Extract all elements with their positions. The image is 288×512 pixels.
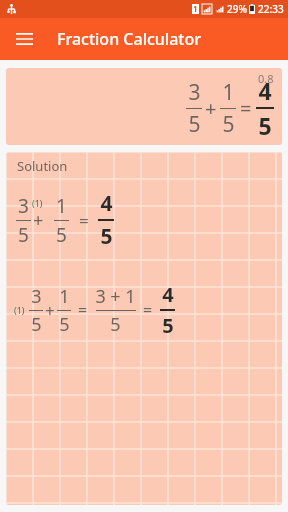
- staticText: 1: [222, 78, 235, 107]
- staticText: 5: [59, 312, 70, 337]
- staticText: 1: [56, 193, 67, 219]
- staticText: +: [45, 299, 55, 322]
- staticText: 5: [31, 312, 42, 337]
- staticText: 3: [18, 193, 29, 219]
- staticText: =: [78, 299, 88, 321]
- staticText: 0.8: [258, 71, 274, 86]
- staticText: Fraction Calculator: [57, 28, 201, 50]
- staticText: 22:33: [258, 2, 284, 16]
- staticText: 5: [18, 222, 29, 248]
- staticText: 5: [188, 110, 201, 139]
- staticText: +: [205, 95, 217, 122]
- staticText: 5: [110, 312, 121, 337]
- staticText: 4: [162, 281, 174, 308]
- staticText: 5: [56, 222, 67, 248]
- staticText: 3: [188, 78, 201, 107]
- button[interactable]: Open navigation menu: [6, 21, 42, 57]
- staticText: 4: [100, 189, 113, 218]
- staticText: 5: [100, 222, 113, 251]
- staticText: 5: [258, 110, 272, 141]
- staticText: =: [240, 95, 252, 122]
- button[interactable]: 0.8: [6, 68, 282, 145]
- staticText: =: [143, 299, 153, 321]
- button[interactable]: Solution: [6, 152, 282, 505]
- staticText: 5: [222, 110, 235, 139]
- staticText: 5: [162, 312, 174, 339]
- staticText: 3: [31, 284, 42, 309]
- staticText: 29%: [227, 2, 247, 16]
- staticText: 3 + 1: [95, 284, 136, 309]
- staticText: =: [79, 209, 89, 232]
- staticText: 4: [258, 75, 272, 106]
- staticText: (1): [14, 304, 25, 316]
- staticText: (1): [32, 197, 43, 209]
- staticText: 1: [59, 284, 70, 309]
- staticText: Solution: [17, 157, 68, 175]
- staticText: +: [33, 208, 44, 233]
